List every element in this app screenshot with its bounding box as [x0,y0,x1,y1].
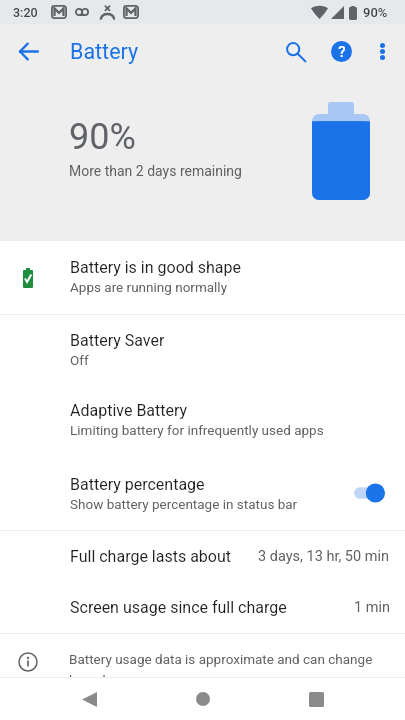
staticText: Full charge lasts about [70,547,232,566]
staticText: Apps are running normally [70,279,228,295]
button[interactable]: Battery Saver [0,315,405,385]
staticText: 90% [363,5,388,20]
staticText: Adaptive Battery [70,401,188,420]
staticText: Battery [70,39,139,64]
button[interactable]: Battery is in good shape [0,241,405,314]
staticText: Battery Saver [70,331,165,350]
button[interactable]: Recent apps [292,678,340,720]
staticText: ? [338,43,346,61]
button[interactable]: Back [12,35,44,67]
button[interactable]: Home [179,678,227,720]
button[interactable]: Screen usage since full charge [0,582,405,633]
button[interactable]: Adaptive Battery [0,385,405,456]
button[interactable]: Search [277,33,313,69]
button[interactable]: More options [364,33,400,69]
staticText: Limiting battery for infrequently used a… [70,422,324,438]
button[interactable]: Battery percentage [0,456,405,530]
staticText: 3 days, 13 hr, 50 min [258,548,390,565]
staticText: Screen usage since full charge [70,598,287,617]
staticText: 3:20 [13,5,38,20]
button[interactable]: Full charge lasts about [0,531,405,582]
staticText: Battery percentage [70,475,205,494]
staticText: 1 min [354,599,390,616]
staticText: Battery usage data is approximate and ca… [69,651,373,677]
staticText: More than 2 days remaining [69,163,242,179]
button[interactable]: Help [323,33,359,69]
button[interactable]: Back [65,678,113,720]
staticText: 90% [69,116,136,158]
staticText: Show battery percentage in status bar [70,496,298,512]
staticText: Off [70,352,89,368]
staticText: Battery is in good shape [70,258,242,277]
